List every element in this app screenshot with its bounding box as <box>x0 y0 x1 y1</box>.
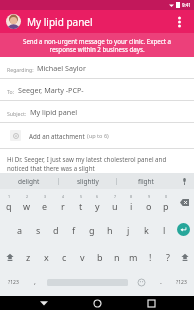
staticText: 1 <box>8 194 11 199</box>
button[interactable]: 2 <box>18 189 36 216</box>
button[interactable]: 3 <box>36 189 54 216</box>
button[interactable]: Voice input <box>174 173 194 189</box>
staticText: q <box>6 200 12 212</box>
button[interactable]: Regarding: <box>0 57 194 79</box>
button[interactable]: 0 <box>157 189 174 216</box>
staticText: 4 <box>62 194 65 199</box>
staticText: Michael Saylor <box>37 63 86 73</box>
button[interactable]: Subject: <box>0 101 194 123</box>
button[interactable]: slightly <box>59 173 116 189</box>
button[interactable]: 4 <box>54 189 72 216</box>
button[interactable]: 9 <box>140 189 157 216</box>
button[interactable]: l <box>155 216 173 243</box>
button[interactable]: x <box>37 243 55 270</box>
staticText: m <box>129 251 138 263</box>
button[interactable]: Patient avatar <box>6 14 21 29</box>
staticText: i <box>130 200 133 212</box>
button[interactable]: ! <box>142 243 159 270</box>
staticText: d <box>53 224 59 236</box>
staticText: j <box>127 224 130 236</box>
button[interactable]: , <box>26 270 43 294</box>
staticText: slightly <box>77 177 99 186</box>
staticText: v <box>80 251 85 263</box>
button[interactable]: c <box>55 243 73 270</box>
button[interactable]: v <box>73 243 91 270</box>
staticText: Send a non-urgent message to your clinic… <box>9 37 185 53</box>
staticText: , <box>34 277 36 287</box>
button[interactable]: Back <box>34 296 54 310</box>
button[interactable]: Space <box>43 270 131 294</box>
button[interactable]: h <box>101 216 119 243</box>
staticText: a <box>17 224 23 236</box>
staticText: y <box>95 200 100 212</box>
staticText: e <box>42 200 48 212</box>
staticText: x <box>44 251 49 263</box>
staticText: 5 <box>80 194 83 199</box>
staticText: n <box>114 251 120 263</box>
staticText: 8 <box>130 194 133 199</box>
staticText: w <box>23 200 31 212</box>
button[interactable]: delight <box>0 173 58 189</box>
button[interactable]: Shift <box>176 243 194 270</box>
staticText: l <box>163 224 166 236</box>
staticText: 7 <box>114 194 117 199</box>
button[interactable]: Shift <box>0 243 19 270</box>
staticText: f <box>72 224 76 236</box>
staticText: Add an attachment <box>29 132 87 140</box>
staticText: Regarding: <box>7 66 34 73</box>
staticText: Hi Dr. Seeger, I just saw my latest chol… <box>7 155 187 173</box>
staticText: o <box>146 200 152 212</box>
button[interactable]: 5 <box>72 189 89 216</box>
button[interactable]: ? <box>159 243 176 270</box>
staticText: b <box>97 251 103 263</box>
button[interactable]: Backspace <box>174 189 194 216</box>
button[interactable]: To: <box>0 79 194 101</box>
button[interactable]: Recent apps <box>141 296 161 310</box>
button[interactable]: g <box>83 216 101 243</box>
button[interactable]: 8 <box>123 189 140 216</box>
staticText: My lipid panel <box>30 107 78 117</box>
staticText: r <box>61 200 65 212</box>
staticText: c <box>62 251 67 263</box>
staticText: 9 <box>148 194 151 199</box>
staticText: ?123 <box>176 279 187 286</box>
button[interactable]: b <box>91 243 108 270</box>
button[interactable]: Emoji <box>131 270 152 294</box>
button[interactable]: f <box>65 216 83 243</box>
staticText: ? <box>166 251 170 263</box>
staticText: (up to 6) <box>87 132 109 140</box>
staticText: p <box>163 200 169 212</box>
staticText: u <box>112 200 118 212</box>
staticText: . <box>160 277 162 287</box>
button[interactable]: z <box>19 243 37 270</box>
button[interactable]: d <box>47 216 65 243</box>
button[interactable]: n <box>108 243 125 270</box>
button[interactable]: flight <box>117 173 174 189</box>
staticText: 0 <box>165 194 168 199</box>
button[interactable]: ?123 <box>169 270 194 294</box>
button[interactable]: More options <box>170 13 188 31</box>
button[interactable]: Home <box>87 296 107 310</box>
button[interactable]: a <box>10 216 29 243</box>
staticText: t <box>79 200 83 212</box>
button[interactable]: 7 <box>106 189 123 216</box>
staticText: 3 <box>44 194 47 199</box>
button[interactable]: Add an attachment <box>0 123 194 148</box>
button[interactable]: . <box>152 270 169 294</box>
staticText: g <box>89 224 95 236</box>
button[interactable]: j <box>119 216 137 243</box>
button[interactable]: ?123 <box>0 270 26 294</box>
button[interactable]: 1 <box>0 189 18 216</box>
staticText: My lipid panel <box>27 15 93 29</box>
button[interactable]: Enter <box>173 216 194 243</box>
button[interactable]: m <box>125 243 142 270</box>
staticText: s <box>36 224 41 236</box>
button[interactable]: 6 <box>89 189 106 216</box>
staticText: ! <box>149 251 152 263</box>
staticText: k <box>144 224 149 236</box>
staticText: ?123 <box>8 279 19 286</box>
staticText: 6 <box>96 194 99 199</box>
button[interactable]: k <box>137 216 155 243</box>
button[interactable]: s <box>29 216 47 243</box>
staticText: delight <box>18 177 40 186</box>
